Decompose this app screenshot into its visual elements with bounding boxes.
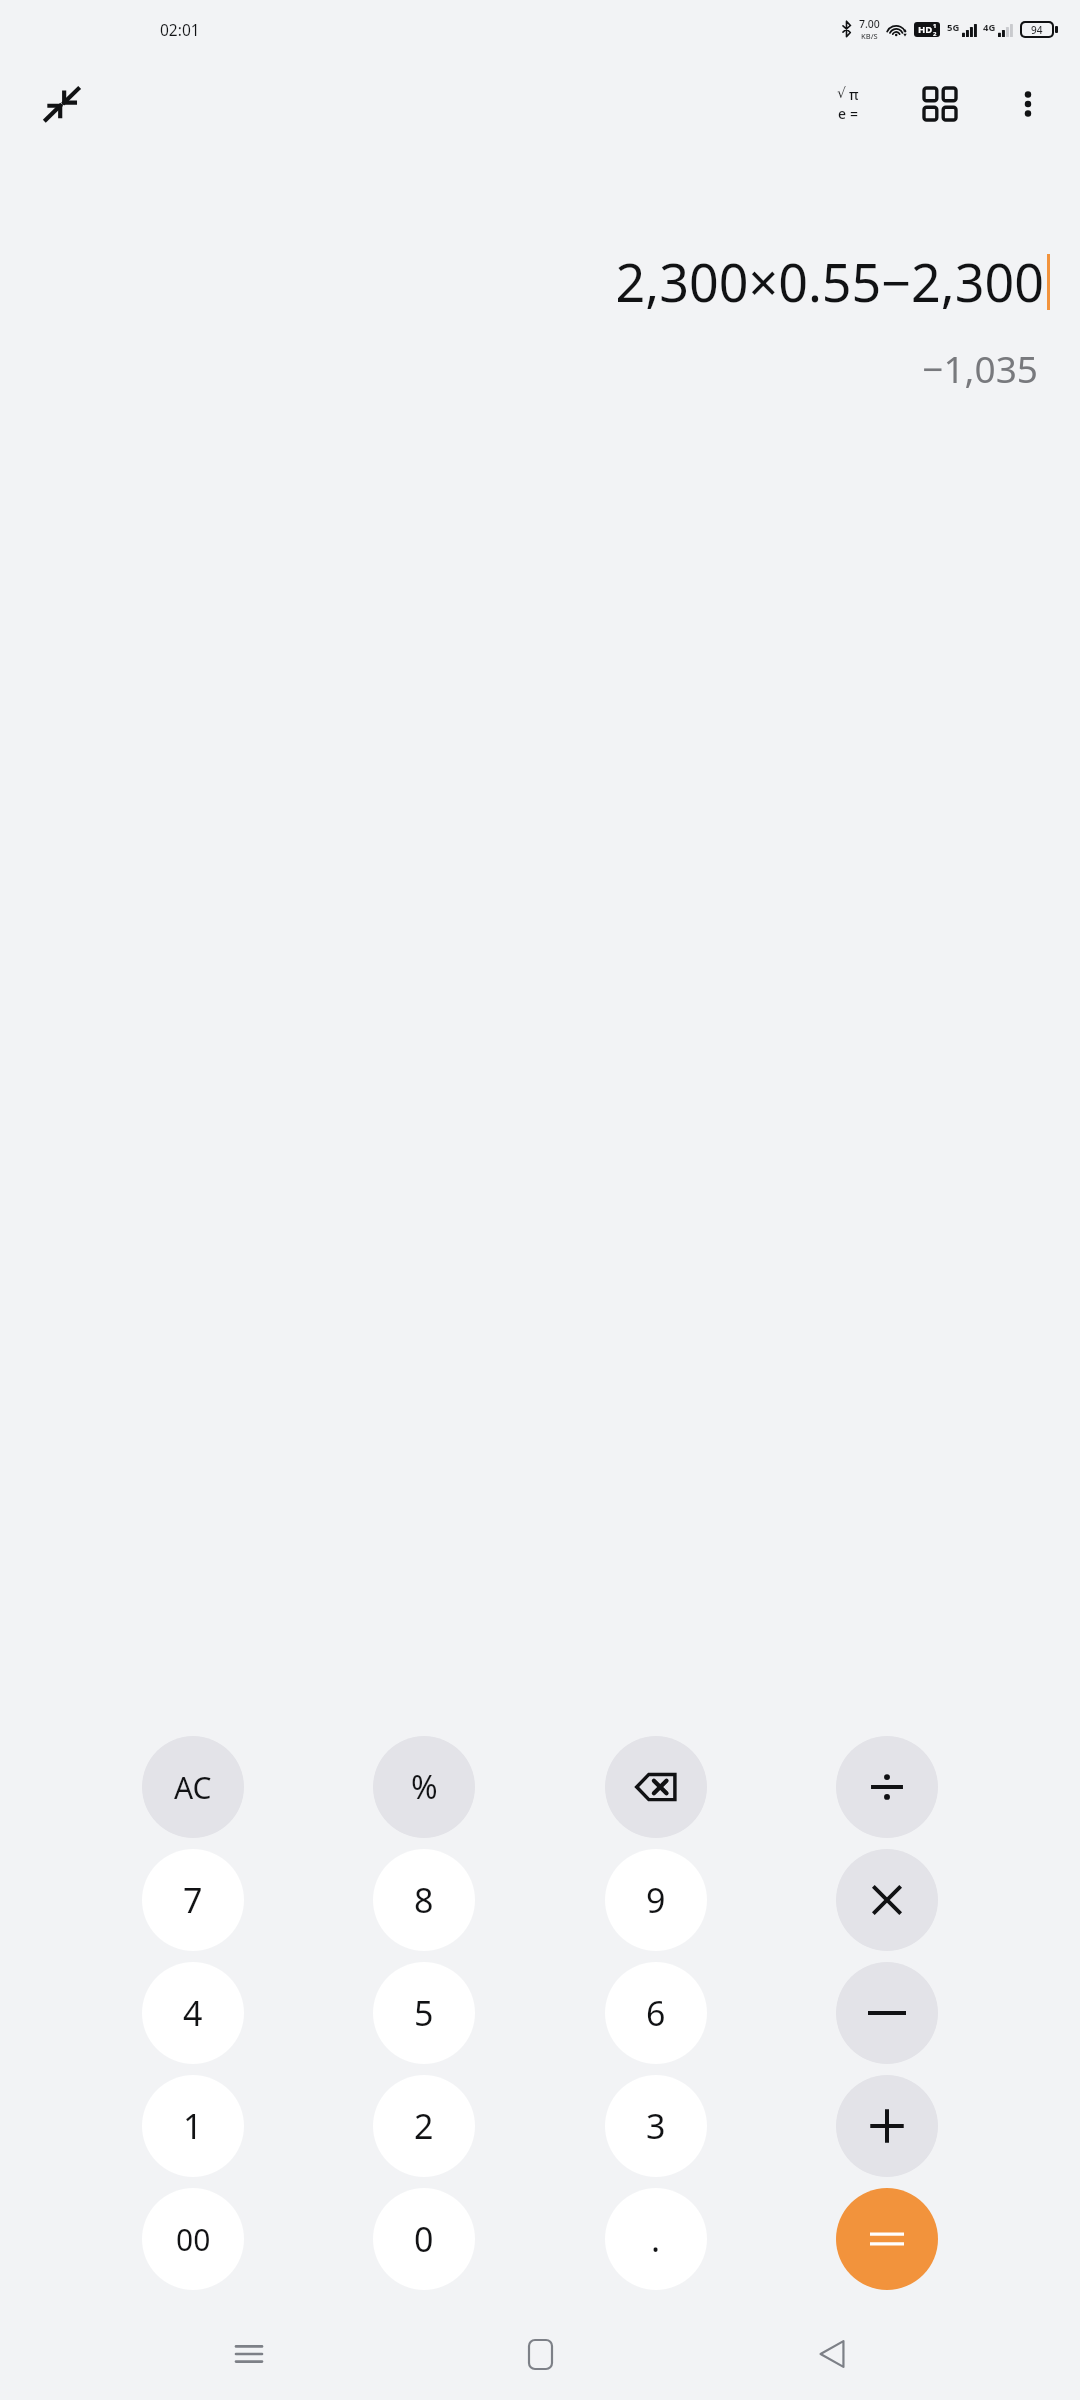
button[interactable]: 00 [142,2188,244,2290]
staticText: 02:01 [160,19,200,40]
staticText: % [411,1765,438,1809]
button[interactable]: Scientific mode [816,72,880,136]
button[interactable]: 5 [373,1962,475,2064]
button[interactable]: Subtract [836,1962,938,2064]
staticText: KB/S [861,31,878,41]
staticText: π [849,85,859,104]
button[interactable]: 1 [142,2075,244,2177]
button[interactable]: 2 [373,2075,475,2177]
staticText: = [850,104,859,123]
staticText: 5 [414,1990,434,2036]
staticText: 94 [1031,23,1043,36]
button[interactable]: . [605,2188,707,2290]
button[interactable]: Unit converter [908,72,972,136]
button[interactable]: Back [789,2311,875,2397]
button[interactable]: More options [1000,76,1056,132]
button[interactable]: Equals [836,2188,938,2290]
staticText: 9 [646,1877,666,1923]
button[interactable]: 9 [605,1849,707,1951]
staticText: HD [918,23,933,36]
button[interactable]: 3 [605,2075,707,2177]
button[interactable]: % [373,1736,475,1838]
staticText: 7.00 [859,17,880,31]
button[interactable]: Recent apps [206,2311,292,2397]
button[interactable]: 0 [373,2188,475,2290]
staticText: . [651,2216,661,2262]
button[interactable]: Add [836,2075,938,2177]
button[interactable]: Home [497,2311,583,2397]
button[interactable]: 8 [373,1849,475,1951]
staticText: 8 [414,1877,434,1923]
staticText: 3 [646,2103,666,2149]
staticText: 2,300×0.55−2,300 [615,246,1044,317]
button[interactable]: Backspace [605,1736,707,1838]
staticText: 1 [933,22,937,30]
staticText: e [838,104,847,123]
button[interactable]: 4 [142,1962,244,2064]
staticText: 2 [933,30,937,37]
staticText: 7 [183,1877,203,1923]
button[interactable]: 7 [142,1849,244,1951]
staticText: 6 [646,1990,666,2036]
button[interactable]: AC [142,1736,244,1838]
button[interactable]: Multiply [836,1849,938,1951]
staticText: 1 [183,2103,203,2149]
staticText: 00 [176,2219,211,2260]
staticText: −1,035 [30,343,1038,393]
button[interactable]: 6 [605,1962,707,2064]
staticText: 0 [414,2216,434,2262]
staticText: AC [174,1767,212,1808]
staticText: 4G [983,21,996,34]
staticText: 4 [183,1990,203,2036]
staticText: 5G [947,21,960,34]
button[interactable]: Divide [836,1736,938,1838]
button[interactable]: Collapse [30,72,94,136]
staticText: 2 [414,2103,434,2149]
staticText: √ [837,85,846,101]
